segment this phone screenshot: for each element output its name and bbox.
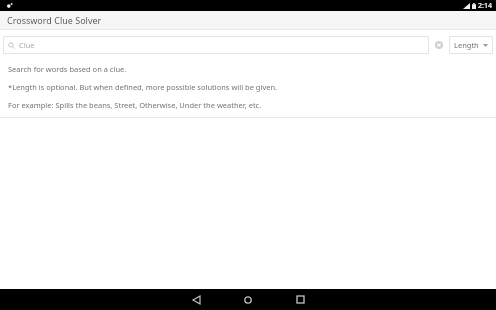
button[interactable]: Clue (3, 36, 429, 54)
staticText: *Length is optional. But when defined, m… (8, 82, 278, 92)
staticText: Length (454, 40, 479, 50)
staticText: Search for words based on a clue. (8, 64, 127, 74)
button[interactable]: Clear text (432, 36, 446, 54)
button[interactable]: Recent apps (287, 289, 313, 310)
staticText: For example: Spills the beans, Street, O… (8, 100, 262, 110)
staticText: Clue (19, 40, 35, 50)
button[interactable]: Length (449, 36, 493, 54)
button[interactable]: Home (235, 289, 261, 310)
staticText: 2:14 (478, 1, 492, 11)
button[interactable]: Back (183, 289, 209, 310)
staticText: Crossword Clue Solver (7, 14, 102, 26)
